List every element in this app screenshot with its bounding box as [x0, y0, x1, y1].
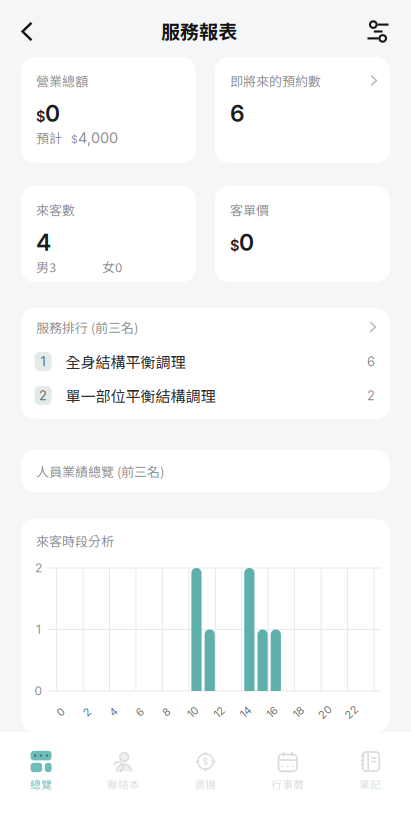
staticText: 6	[367, 354, 375, 369]
staticText: 8	[163, 705, 170, 719]
staticText: 服務報表	[161, 17, 237, 44]
staticText: 0	[35, 684, 43, 698]
button[interactable]: $	[164, 732, 247, 815]
staticText: $0	[36, 100, 60, 127]
staticText: $4,000	[71, 129, 118, 146]
staticText: 商機	[194, 776, 216, 792]
staticText: 男3	[36, 257, 56, 276]
staticText: 22	[344, 705, 358, 719]
staticText: 2	[35, 561, 42, 575]
staticText: 營業總額	[36, 71, 88, 90]
staticText: 0	[57, 705, 64, 719]
staticText: 預計	[36, 128, 62, 147]
staticText: 10	[187, 705, 198, 719]
staticText: $	[202, 756, 208, 767]
button[interactable]: 服務排行 (前三名)	[21, 308, 390, 346]
button[interactable]: 2	[21, 380, 390, 411]
staticText: 單一部位平衡結構調理	[66, 385, 216, 406]
staticText: 即將來的預約數	[230, 71, 321, 90]
staticText: 20	[318, 705, 332, 719]
staticText: 2	[39, 388, 47, 403]
button[interactable]: 人員業績總覽 (前三名)	[21, 450, 390, 492]
staticText: 14	[240, 705, 251, 719]
staticText: 總覽	[30, 776, 52, 792]
button[interactable]: 總覽	[0, 732, 82, 815]
button[interactable]: 聯絡本	[82, 732, 164, 815]
staticText: 16	[267, 705, 278, 719]
staticText: 客單價	[230, 200, 269, 219]
staticText: 2	[83, 705, 90, 719]
staticText: 6	[136, 705, 143, 719]
staticText: 聯絡本	[107, 776, 140, 792]
button[interactable]: 即將來的預約數	[215, 57, 390, 163]
staticText: 全身結構平衡調理	[66, 351, 186, 372]
staticText: 2	[367, 388, 375, 403]
staticText: 來客數	[36, 200, 75, 219]
staticText: 4	[110, 705, 117, 719]
staticText: 行事曆	[271, 776, 304, 792]
staticText: 女0	[102, 257, 122, 276]
staticText: 1	[36, 622, 41, 637]
staticText: 筆記	[359, 776, 381, 792]
staticText: 1	[41, 354, 46, 369]
button[interactable]: 行事曆	[247, 732, 329, 815]
staticText: 6	[230, 100, 245, 127]
staticText: 4	[36, 229, 51, 256]
button[interactable]: Filter	[356, 9, 400, 53]
staticText: 人員業績總覽 (前三名)	[36, 462, 164, 480]
staticText: $0	[230, 229, 254, 256]
staticText: 18	[293, 705, 304, 719]
staticText: 服務排行 (前三名)	[36, 318, 138, 336]
button[interactable]: 1	[21, 346, 390, 377]
staticText: 12	[214, 705, 225, 719]
button[interactable]: 筆記	[329, 732, 411, 815]
staticText: 來客時段分析	[36, 531, 114, 550]
button[interactable]: Back	[5, 9, 49, 53]
